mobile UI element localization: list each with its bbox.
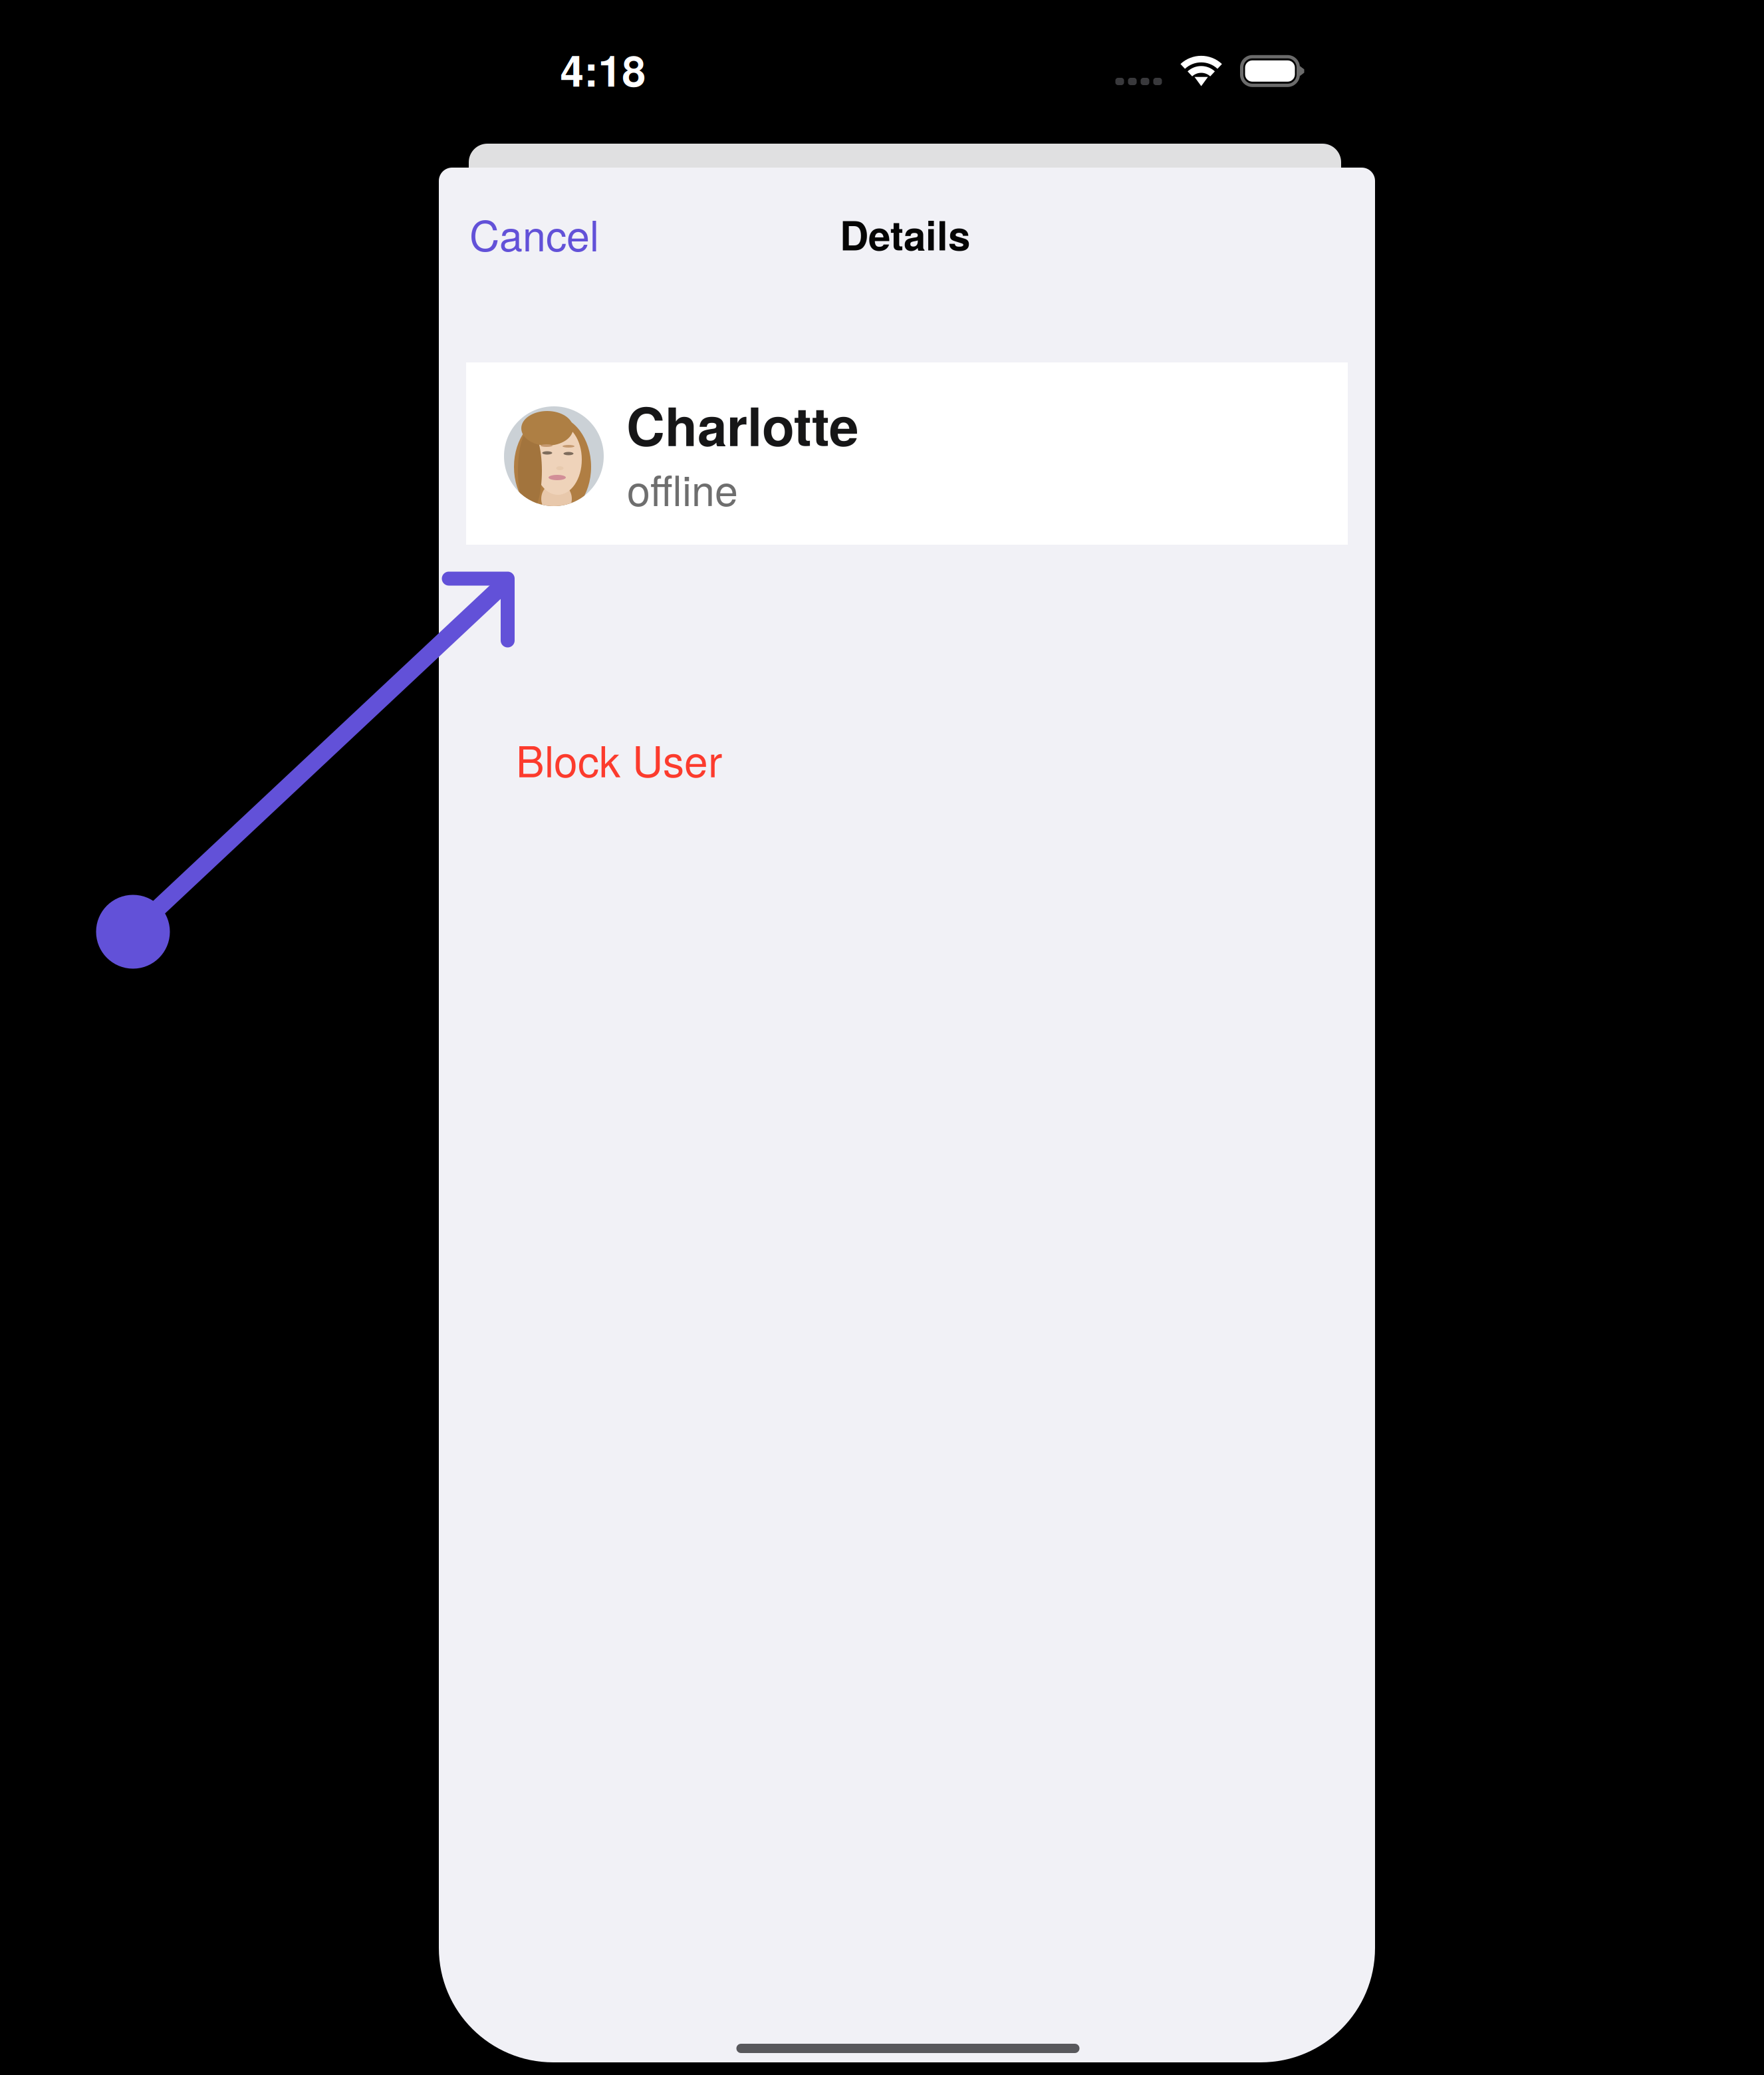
staticText: Details xyxy=(840,206,970,263)
staticText: offline xyxy=(627,458,738,518)
staticText: Charlotte xyxy=(626,386,858,462)
staticText: 4:18 xyxy=(560,39,646,100)
button[interactable]: Block User xyxy=(516,718,815,799)
staticText: Cancel xyxy=(469,204,599,263)
button[interactable]: Charlotte xyxy=(466,362,1348,545)
staticText: Block User xyxy=(516,728,722,789)
button[interactable]: Cancel xyxy=(469,193,634,274)
